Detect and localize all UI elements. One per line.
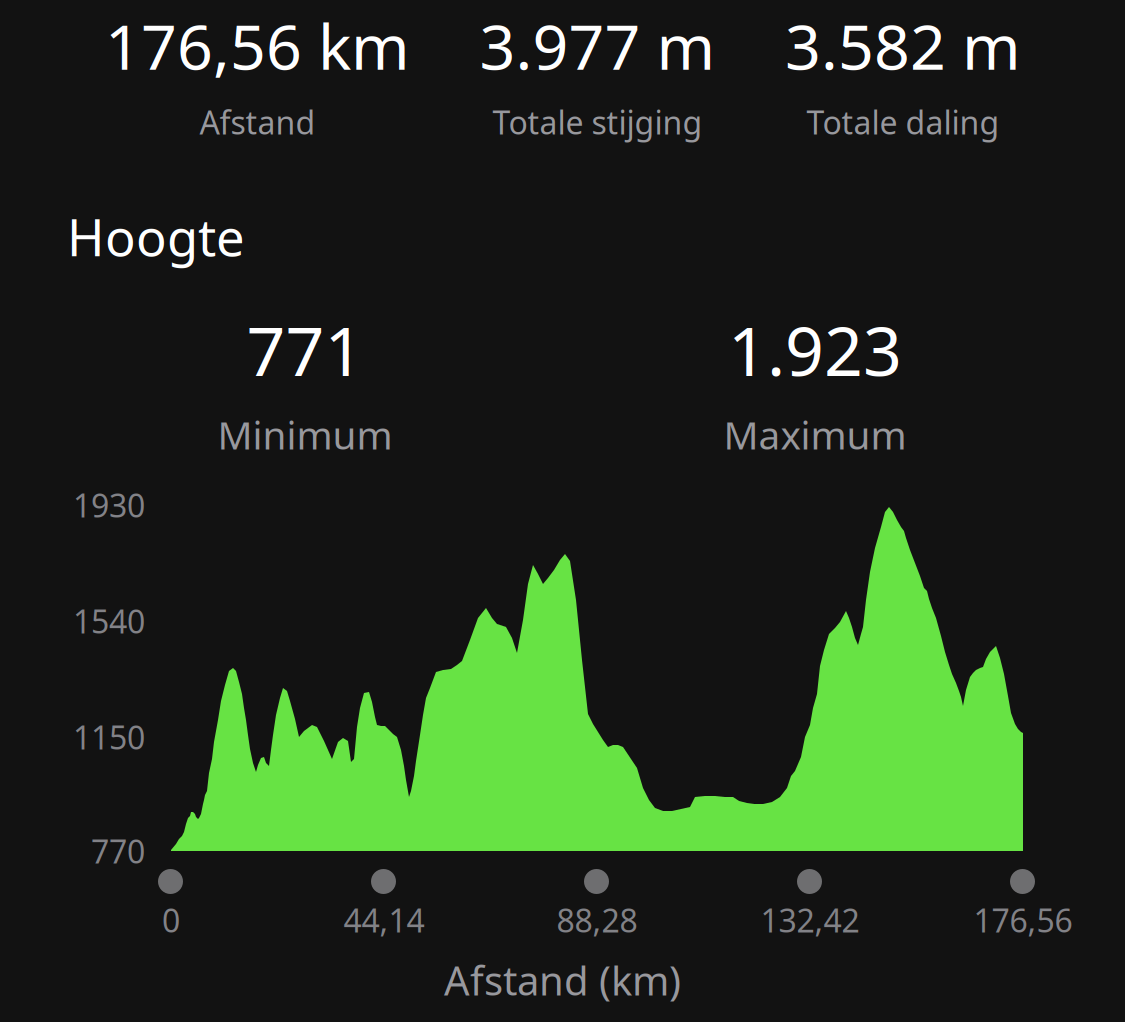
staticText: Minimum xyxy=(217,409,392,460)
staticText: 1930 xyxy=(73,484,145,526)
staticText: 1540 xyxy=(73,600,145,642)
staticText: 176,56 xyxy=(973,899,1072,941)
staticText: Afstand (km) xyxy=(444,953,681,1006)
staticText: 176,56 km xyxy=(105,4,410,87)
staticText: 88,28 xyxy=(556,899,637,941)
staticText: 1150 xyxy=(73,716,145,758)
staticText: 0 xyxy=(162,899,180,941)
staticText: Afstand xyxy=(199,101,315,143)
staticText: 770 xyxy=(91,830,145,872)
staticText: 44,14 xyxy=(343,899,424,941)
staticText: 3.582 m xyxy=(785,4,1021,87)
staticText: 1.923 xyxy=(728,304,902,395)
staticText: 132,42 xyxy=(760,899,859,941)
staticText: Totale stijging xyxy=(492,101,702,143)
staticText: Maximum xyxy=(723,409,906,460)
staticText: 771 xyxy=(246,304,363,395)
staticText: Totale daling xyxy=(806,101,999,143)
staticText: 3.977 m xyxy=(479,4,715,87)
staticText: Hoogte xyxy=(67,203,245,270)
